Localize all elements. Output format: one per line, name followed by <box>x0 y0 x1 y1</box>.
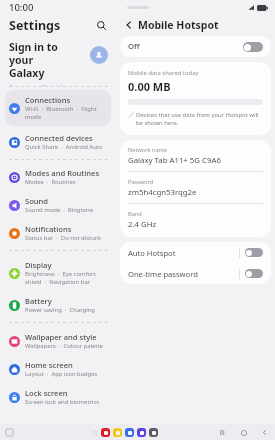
staticText: Notifications <box>25 224 72 234</box>
button[interactable]: App 2 <box>113 428 122 437</box>
staticText: Sound <box>25 196 49 206</box>
button[interactable]: Sound <box>5 191 111 219</box>
button[interactable]: App 3 <box>125 428 134 437</box>
staticText: Network name <box>128 146 167 154</box>
staticText: Display <box>25 260 52 270</box>
staticText: Connections <box>25 95 71 105</box>
button[interactable]: Back <box>122 18 136 32</box>
staticText: Auto Hotspot <box>128 248 176 258</box>
staticText: Modes · Routines <box>25 178 76 186</box>
staticText: Band <box>128 210 142 218</box>
button[interactable]: Connections <box>5 90 111 126</box>
button[interactable]: Back <box>260 428 269 437</box>
button[interactable]: Notifications <box>5 219 111 247</box>
staticText: Wallpapers · Colour palette <box>25 342 103 350</box>
button[interactable]: Display <box>5 255 111 291</box>
button[interactable]: App 5 <box>149 428 158 437</box>
staticText: Status bar · Do not disturb <box>25 234 101 242</box>
staticText: Layout · App icon badges <box>25 370 98 378</box>
staticText: Power saving · Charging <box>25 306 95 314</box>
staticText: Off <box>128 41 140 52</box>
staticText: Devices that use data from your Hotspot … <box>136 111 259 127</box>
button[interactable]: Lock screen <box>5 383 111 411</box>
staticText: 2.4 GHz <box>128 219 157 230</box>
button[interactable]: Toggle off <box>245 269 263 278</box>
staticText: Wallpaper and style <box>25 332 97 342</box>
button[interactable]: Battery <box>5 291 111 319</box>
button[interactable]: Toggle off <box>245 248 263 257</box>
staticText: Sound mode · Ringtone <box>25 206 94 214</box>
staticText: Modes and Routines <box>25 168 100 178</box>
staticText: Brightness · Eye comfort shield · Naviga… <box>25 270 96 286</box>
button[interactable]: Home screen <box>5 355 111 383</box>
staticText: Galaxy Tab A11+ 5G C9A6 <box>128 155 221 166</box>
button[interactable]: Modes and Routines <box>5 163 111 191</box>
button[interactable]: App 1 <box>101 428 110 437</box>
staticText: Answer calls and texts on <box>9 83 78 86</box>
button[interactable]: Recent app <box>5 428 13 436</box>
staticText: Home screen <box>25 360 73 370</box>
button[interactable]: Toggle off <box>243 42 263 52</box>
button[interactable]: Recents <box>218 428 227 437</box>
button[interactable]: App 4 <box>137 428 146 437</box>
staticText: Mobile Hotspot <box>138 18 219 32</box>
staticText: Screen lock and biometrics <box>25 398 100 406</box>
staticText: Settings <box>9 17 61 34</box>
button[interactable]: Home <box>239 428 248 437</box>
staticText: Wi-Fi · Bluetooth · Flight mode <box>25 105 97 121</box>
button[interactable]: Off <box>120 36 271 57</box>
staticText: Quick Share · Android Auto <box>25 143 103 151</box>
button[interactable]: Auto Hotspot <box>120 242 271 263</box>
staticText: 10:00 <box>9 1 34 14</box>
staticText: Lock screen <box>25 388 68 398</box>
staticText: 0.00 MB <box>128 79 171 94</box>
staticText: Sign in to your <box>9 40 78 67</box>
staticText: One-time password <box>128 269 198 279</box>
staticText: Mobile data shared today <box>128 69 199 77</box>
button[interactable]: Wallpaper and style <box>5 327 111 355</box>
staticText: Galaxy <box>9 66 45 80</box>
button[interactable]: Sign in to your <box>0 36 116 86</box>
button[interactable]: One-time password <box>120 263 271 284</box>
staticText: Battery <box>25 296 52 306</box>
button[interactable]: Connected devices <box>5 128 111 156</box>
button[interactable]: Search <box>93 17 109 33</box>
button[interactable]: All apps <box>90 429 98 437</box>
staticText: zm5h4cgn53rqg2e <box>128 187 197 198</box>
staticText: Password <box>128 178 154 186</box>
staticText: Connected devices <box>25 133 93 143</box>
